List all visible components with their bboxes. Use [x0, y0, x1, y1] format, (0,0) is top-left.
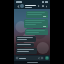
- button[interactable]: Back: [16, 4, 20, 8]
- button[interactable]: [16, 48, 37, 54]
- button[interactable]: [26, 11, 48, 18]
- button[interactable]: [25, 5, 37, 8]
- button[interactable]: [25, 29, 48, 35]
- button[interactable]: Voice call: [41, 4, 45, 8]
- button[interactable]: [16, 43, 34, 47]
- button[interactable]: More options: [45, 5, 48, 8]
- button[interactable]: [24, 19, 48, 28]
- button[interactable]: [15, 56, 44, 60]
- button[interactable]: Voice message: [45, 56, 49, 60]
- button[interactable]: Video call: [37, 4, 41, 8]
- button[interactable]: Contact avatar: [20, 4, 24, 8]
- button[interactable]: [16, 36, 36, 42]
